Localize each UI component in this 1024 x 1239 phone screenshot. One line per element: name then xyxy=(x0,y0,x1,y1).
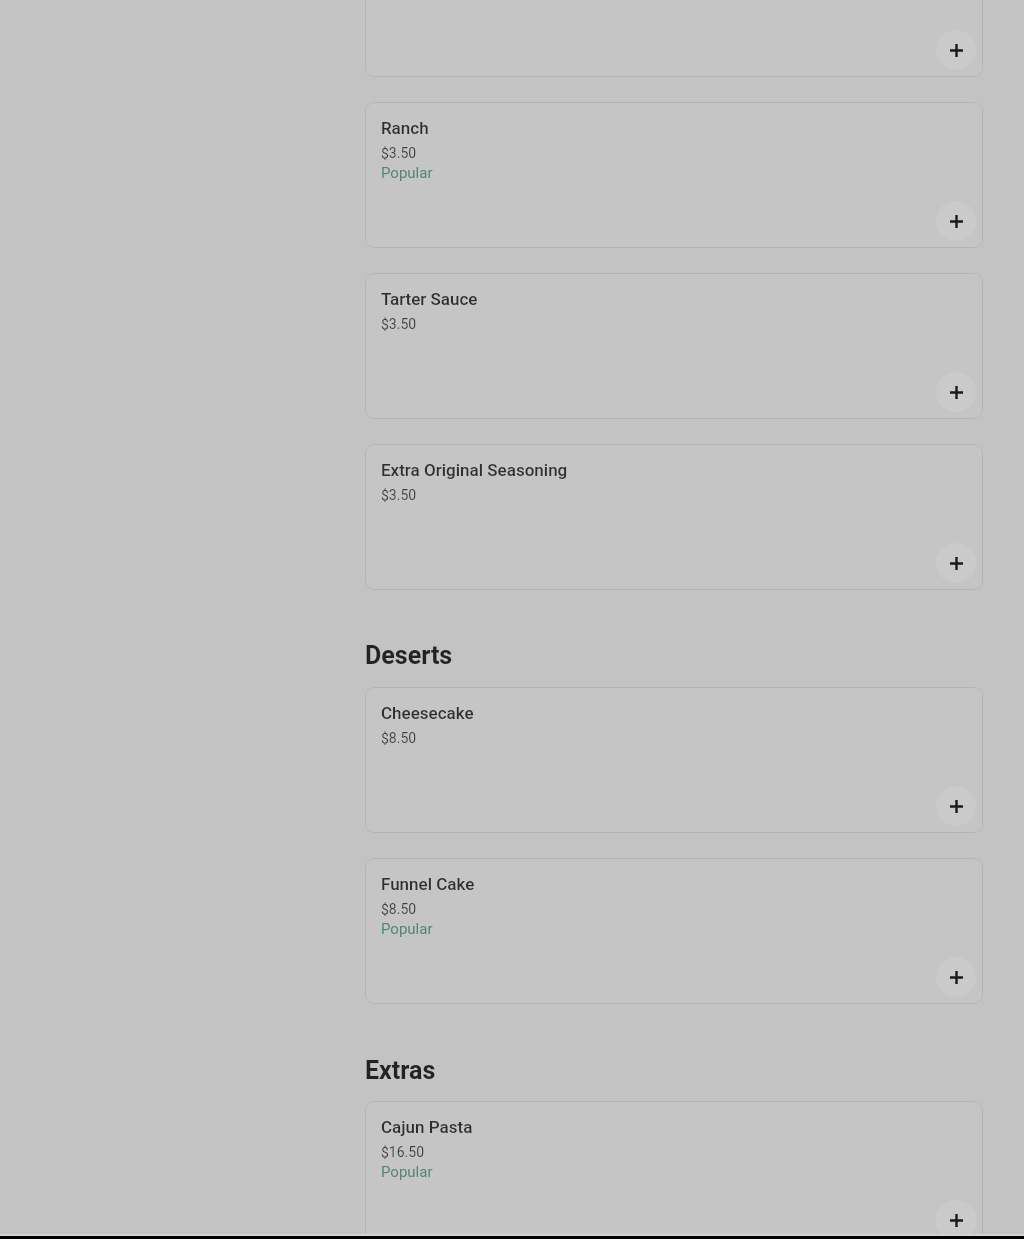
staticText: $3.50 xyxy=(381,316,417,332)
staticText: Cajun Pasta xyxy=(381,1117,473,1137)
staticText: Tarter Sauce xyxy=(381,289,478,309)
staticText: $8.50 xyxy=(381,901,417,917)
button[interactable]: Extra Original Seasoning xyxy=(365,444,983,590)
button[interactable]: Add Extra Original Seasoning xyxy=(936,543,976,583)
staticText: Popular xyxy=(381,920,433,938)
button[interactable]: Add Funnel Cake xyxy=(936,957,976,997)
button[interactable]: Cheesecake xyxy=(365,687,983,833)
button[interactable]: Add Tarter Sauce xyxy=(936,372,976,412)
button[interactable]: Add Cheesecake xyxy=(936,786,976,826)
button[interactable]: Ranch xyxy=(365,102,983,248)
button[interactable]: Add Cajun Pasta xyxy=(936,1200,976,1239)
staticText: Popular xyxy=(381,164,433,182)
staticText: $16.50 xyxy=(381,1144,425,1160)
button[interactable]: Add Ranch xyxy=(936,201,976,241)
staticText: Funnel Cake xyxy=(381,874,475,894)
button[interactable]: Cajun Pasta xyxy=(365,1101,983,1239)
button[interactable]: Hot Sauce xyxy=(365,0,983,77)
staticText: Deserts xyxy=(365,641,453,670)
staticText: Cheesecake xyxy=(381,703,474,723)
staticText: $8.50 xyxy=(381,730,417,746)
staticText: $3.50 xyxy=(381,145,417,161)
staticText: Extra Original Seasoning xyxy=(381,460,568,480)
staticText: Popular xyxy=(381,1163,433,1181)
staticText: Ranch xyxy=(381,118,429,138)
button[interactable]: Funnel Cake xyxy=(365,858,983,1004)
button[interactable]: Tarter Sauce xyxy=(365,273,983,419)
staticText: Extras xyxy=(365,1056,436,1085)
staticText: $3.50 xyxy=(381,487,417,503)
button[interactable]: Add Hot Sauce xyxy=(936,30,976,70)
